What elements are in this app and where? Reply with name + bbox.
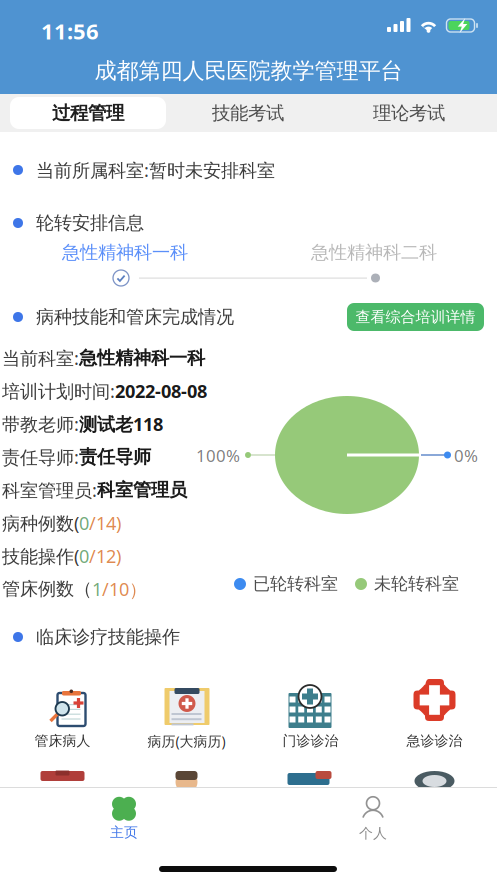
staticText: 过程管理	[52, 101, 124, 125]
button[interactable]: 主页	[0, 789, 248, 849]
button[interactable]: 技能考试	[170, 97, 326, 129]
staticText: 带教老师:	[2, 412, 79, 436]
staticText: 当前所属科室:暂时未安排科室	[36, 158, 275, 182]
staticText: 责任导师	[79, 446, 151, 468]
button[interactable]: 管床病人	[0, 670, 124, 756]
staticText: 科室管理员:	[2, 478, 97, 502]
staticText: 急性精神科一科	[62, 241, 188, 264]
staticText: 病种技能和管床完成情况	[36, 306, 234, 328]
staticText: /10）	[102, 577, 147, 601]
button[interactable]: 病历(大病历)	[124, 670, 248, 756]
staticText: 管床病人	[34, 732, 90, 750]
staticText: 测试老118	[79, 412, 163, 436]
staticText: 急诊诊治	[406, 732, 462, 750]
staticText: /14)	[89, 511, 121, 535]
staticText: /12)	[89, 544, 121, 568]
button[interactable]: 过程管理	[10, 97, 166, 129]
staticText: 个人	[359, 825, 387, 842]
staticText: 0	[79, 511, 89, 535]
staticText: 查看综合培训详情	[355, 308, 475, 326]
staticText: 0%	[454, 444, 478, 467]
staticText: 急性精神科一科	[79, 347, 205, 369]
staticText: 责任导师:	[2, 445, 79, 469]
staticText: 轮转安排信息	[36, 212, 144, 234]
button[interactable]: 急诊诊治	[372, 670, 496, 756]
button[interactable]: 查看综合培训详情	[347, 303, 484, 331]
staticText: 管床例数（	[2, 578, 92, 600]
staticText: 技能考试	[212, 101, 284, 125]
staticText: 病历(大病历)	[147, 732, 225, 750]
staticText: 当前科室:	[2, 346, 79, 370]
staticText: 主页	[110, 824, 138, 841]
staticText: 科室管理员	[97, 479, 187, 501]
staticText: 已轮转科室	[253, 573, 338, 594]
button[interactable]: 理论考试	[331, 97, 487, 129]
staticText: 1	[92, 577, 102, 601]
staticText: 100%	[196, 444, 240, 467]
staticText: 技能操作(	[2, 544, 79, 568]
staticText: 11:56	[41, 16, 99, 46]
staticText: 急性精神科二科	[311, 241, 437, 264]
staticText: 成都第四人民医院教学管理平台	[94, 57, 402, 85]
button[interactable]: 门诊诊治	[248, 670, 372, 756]
staticText: 未轮转科室	[374, 573, 459, 594]
button[interactable]: 个人	[249, 789, 497, 849]
staticText: 临床诊疗技能操作	[36, 626, 180, 648]
staticText: 2022-08-08	[115, 379, 207, 403]
staticText: 培训计划时间:	[2, 379, 115, 403]
staticText: 病种例数(	[2, 511, 79, 535]
staticText: 理论考试	[373, 101, 445, 125]
staticText: 0	[79, 544, 89, 568]
staticText: 门诊诊治	[282, 732, 338, 750]
